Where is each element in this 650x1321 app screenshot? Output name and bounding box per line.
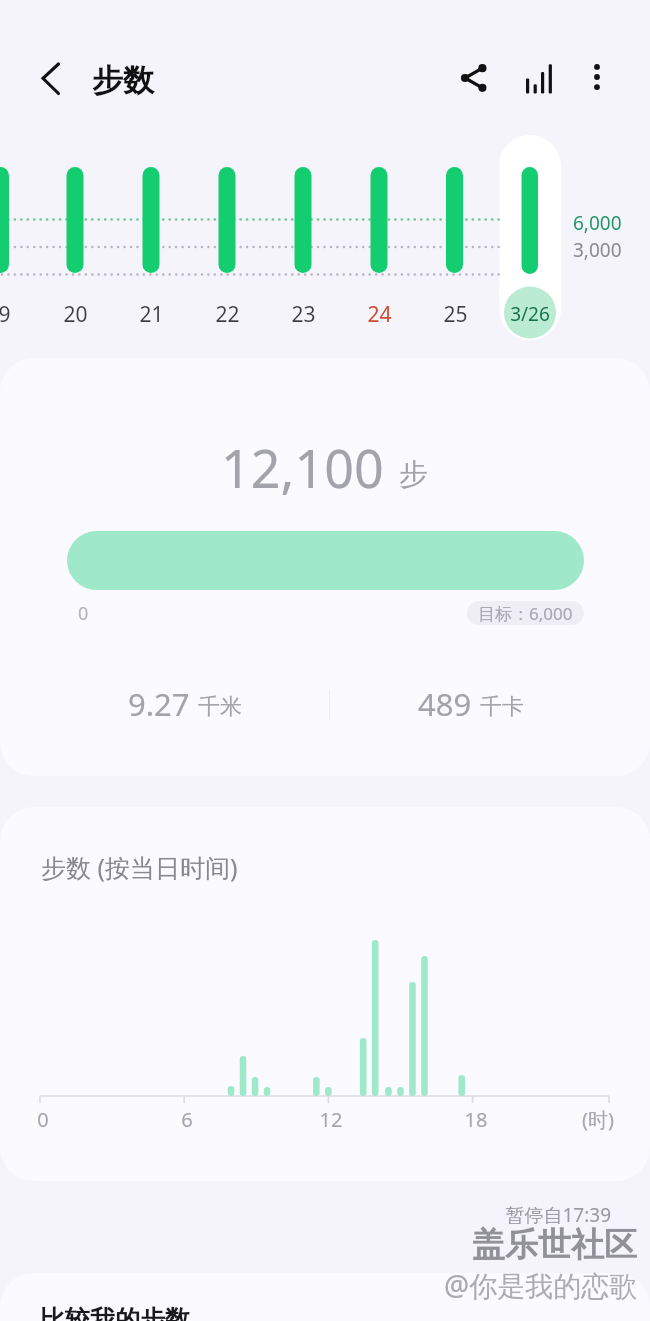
staticText: 6,000 (573, 210, 622, 236)
button[interactable]: 20 (45, 140, 105, 350)
staticText: 3,000 (573, 237, 622, 263)
staticText: @你是我的恋歌 (444, 1266, 638, 1304)
staticText: 25 (443, 300, 468, 329)
staticText: 18 (451, 1106, 501, 1133)
button[interactable]: Statistics (514, 54, 564, 104)
staticText: 暂停自17:39 (500, 1202, 611, 1228)
button[interactable]: 23 (273, 140, 333, 350)
staticText: 12,100 (221, 432, 384, 503)
staticText: 0 (18, 1106, 68, 1133)
staticText: 目标：6,000 (478, 602, 573, 625)
staticText: 9.27 (128, 683, 190, 725)
button[interactable]: 22 (197, 140, 257, 350)
button[interactable]: Share (449, 53, 499, 103)
staticText: 22 (215, 300, 240, 329)
staticText: 盖乐世社区 (472, 1224, 637, 1266)
button[interactable]: 步数 (按当日时间) (0, 807, 650, 1181)
staticText: 20 (63, 300, 88, 329)
staticText: 步数 (92, 61, 154, 100)
staticText: 比较我的步数 (40, 1304, 190, 1321)
staticText: 9 (0, 300, 11, 329)
button[interactable]: Back (19, 54, 67, 102)
button[interactable]: 12,100 (0, 358, 650, 776)
staticText: 489 (418, 683, 472, 725)
staticText: 12 (306, 1106, 356, 1133)
staticText: 3/26 (510, 301, 550, 327)
button[interactable]: 21 (121, 140, 181, 350)
staticText: 21 (139, 300, 164, 329)
button[interactable]: 比较我的步数 (0, 1273, 650, 1321)
staticText: 千卡 (480, 693, 524, 721)
button[interactable]: 25 (425, 140, 485, 350)
staticText: (时) (569, 1106, 627, 1133)
staticText: 23 (291, 300, 316, 329)
staticText: 6 (162, 1106, 212, 1133)
staticText: 24 (367, 300, 392, 329)
button[interactable]: More options (573, 53, 621, 101)
button[interactable]: 3/26 (499, 135, 561, 340)
button[interactable]: 9 (0, 140, 34, 350)
staticText: 步数 (按当日时间) (41, 850, 238, 884)
staticText: 步 (399, 456, 428, 493)
button[interactable]: 24 (349, 140, 409, 350)
staticText: 0 (78, 601, 89, 626)
staticText: 千米 (198, 693, 242, 721)
